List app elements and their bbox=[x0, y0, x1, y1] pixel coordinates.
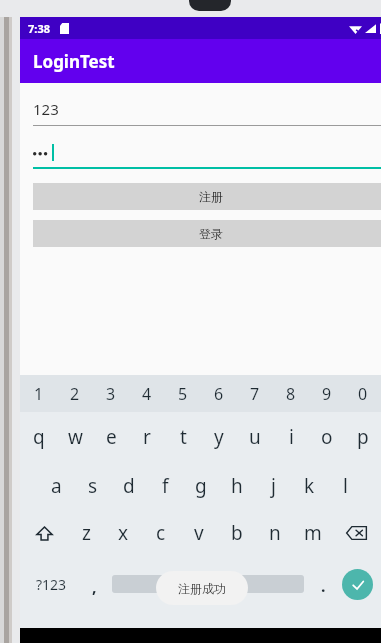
button[interactable]: b bbox=[218, 510, 256, 556]
button[interactable]: Enter bbox=[342, 569, 373, 600]
button[interactable]: w bbox=[57, 412, 93, 462]
button[interactable]: t bbox=[165, 412, 201, 462]
staticText: b bbox=[231, 520, 243, 546]
staticText: 123 bbox=[33, 99, 59, 119]
staticText: 8 bbox=[286, 383, 296, 405]
button[interactable]: h bbox=[219, 462, 255, 510]
staticText: 0 bbox=[358, 383, 368, 405]
staticText: LoginTest bbox=[33, 50, 115, 73]
staticText: 登录 bbox=[199, 226, 223, 241]
staticText: r bbox=[143, 424, 151, 450]
button[interactable]: 5 bbox=[165, 375, 201, 412]
staticText: 5 bbox=[178, 383, 188, 405]
button[interactable]: 4 bbox=[129, 375, 165, 412]
button[interactable]: 123 bbox=[33, 99, 381, 126]
staticText: c bbox=[156, 520, 166, 546]
button[interactable]: 7 bbox=[237, 375, 273, 412]
button[interactable]: 3 bbox=[93, 375, 129, 412]
staticText: f bbox=[162, 473, 169, 499]
staticText: s bbox=[88, 473, 98, 499]
button[interactable]: d bbox=[111, 462, 147, 510]
staticText: h bbox=[231, 473, 243, 499]
button[interactable]: 6 bbox=[201, 375, 237, 412]
button[interactable]: o bbox=[309, 412, 345, 462]
staticText: n bbox=[269, 520, 281, 546]
button[interactable]: i bbox=[273, 412, 309, 462]
button[interactable]: n bbox=[256, 510, 294, 556]
button[interactable]: p bbox=[345, 412, 381, 462]
staticText: t bbox=[180, 424, 187, 450]
staticText: 6 bbox=[214, 383, 224, 405]
button[interactable]: g bbox=[183, 462, 219, 510]
staticText: m bbox=[304, 520, 322, 546]
staticText: 3 bbox=[106, 383, 116, 405]
button[interactable]: m bbox=[294, 510, 332, 556]
button[interactable] bbox=[33, 144, 381, 169]
button[interactable]: 2 bbox=[57, 375, 93, 412]
button[interactable]: e bbox=[93, 412, 129, 462]
button[interactable]: u bbox=[237, 412, 273, 462]
button[interactable]: 0 bbox=[345, 375, 381, 412]
button[interactable]: l bbox=[327, 462, 363, 510]
staticText: a bbox=[51, 473, 62, 499]
button[interactable]: s bbox=[75, 462, 111, 510]
staticText: q bbox=[33, 424, 45, 450]
button[interactable]: c bbox=[142, 510, 180, 556]
staticText: l bbox=[343, 473, 348, 499]
staticText: g bbox=[195, 473, 207, 499]
staticText: 7 bbox=[250, 383, 260, 405]
button[interactable]: v bbox=[180, 510, 218, 556]
staticText: w bbox=[68, 424, 83, 450]
button[interactable]: a bbox=[38, 462, 75, 510]
staticText: 注册成功 bbox=[178, 581, 226, 596]
button[interactable]: q bbox=[20, 412, 57, 462]
button[interactable]: . bbox=[304, 556, 342, 612]
staticText: y bbox=[214, 424, 224, 450]
button[interactable]: 登录 bbox=[33, 220, 381, 247]
staticText: z bbox=[82, 520, 91, 546]
button[interactable]: Space bbox=[112, 575, 304, 593]
staticText: , bbox=[92, 576, 97, 598]
button[interactable]: Backspace bbox=[332, 510, 381, 556]
staticText: ?123 bbox=[36, 575, 67, 594]
staticText: x bbox=[118, 520, 129, 546]
staticText: 4 bbox=[142, 383, 152, 405]
button[interactable]: Shift bbox=[20, 510, 68, 556]
button[interactable]: 9 bbox=[309, 375, 345, 412]
staticText: 2 bbox=[70, 383, 80, 405]
staticText: i bbox=[289, 424, 294, 450]
button[interactable]: f bbox=[147, 462, 183, 510]
staticText: v bbox=[194, 520, 204, 546]
staticText: u bbox=[249, 424, 261, 450]
staticText: . bbox=[321, 575, 326, 597]
button[interactable]: 1 bbox=[20, 375, 57, 412]
staticText: 7:38 bbox=[28, 21, 50, 36]
staticText: p bbox=[357, 424, 369, 450]
staticText: d bbox=[123, 473, 135, 499]
button[interactable]: k bbox=[291, 462, 327, 510]
button[interactable]: z bbox=[68, 510, 105, 556]
button[interactable]: y bbox=[201, 412, 237, 462]
staticText: 注册 bbox=[199, 189, 223, 204]
button[interactable]: 注册 bbox=[33, 183, 381, 210]
button[interactable]: ?123 bbox=[26, 556, 76, 612]
button[interactable]: , bbox=[76, 556, 112, 612]
button[interactable]: x bbox=[105, 510, 142, 556]
staticText: o bbox=[321, 424, 333, 450]
staticText: 1 bbox=[34, 383, 44, 405]
button[interactable]: j bbox=[255, 462, 291, 510]
staticText: j bbox=[271, 473, 276, 499]
staticText: e bbox=[106, 424, 117, 450]
staticText: k bbox=[304, 473, 315, 499]
staticText: 9 bbox=[322, 383, 332, 405]
button[interactable]: r bbox=[129, 412, 165, 462]
button[interactable]: 8 bbox=[273, 375, 309, 412]
